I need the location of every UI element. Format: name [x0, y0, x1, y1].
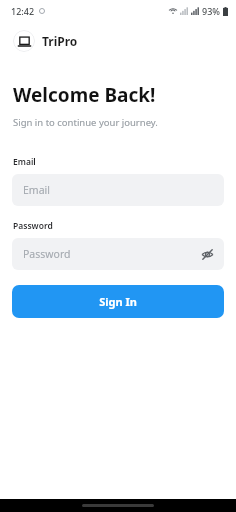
button[interactable]: Sign In	[12, 285, 224, 318]
button[interactable]: Show password	[198, 245, 216, 263]
staticText: Email	[23, 183, 50, 197]
staticText: 93%	[202, 5, 220, 17]
button[interactable]: Password	[12, 238, 224, 270]
staticText: Sign in to continue your journey.	[13, 116, 158, 129]
staticText: Welcome Back!	[13, 82, 156, 108]
button[interactable]: Email	[12, 174, 224, 206]
staticText: Password	[13, 220, 53, 232]
button[interactable]: TriPro	[13, 30, 236, 52]
staticText: Password	[23, 247, 71, 261]
staticText: 12:42	[11, 5, 35, 17]
staticText: TriPro	[42, 33, 78, 49]
staticText: Sign In	[99, 294, 137, 309]
staticText: Email	[13, 156, 36, 168]
